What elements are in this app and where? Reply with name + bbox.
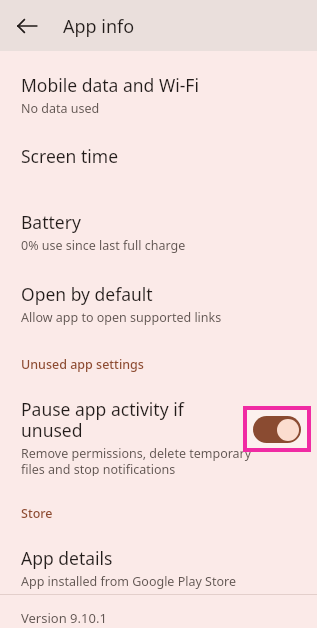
staticText: Allow app to open supported links xyxy=(21,309,222,325)
button[interactable]: App details xyxy=(0,540,317,590)
staticText: App info xyxy=(63,14,135,39)
button[interactable]: Battery xyxy=(0,203,317,253)
staticText: Pause app activity if unused xyxy=(21,397,184,442)
staticText: Remove permissions, delete temporary fil… xyxy=(21,445,252,476)
staticText: 0% use since last full charge xyxy=(21,237,186,253)
button[interactable]: Open by default xyxy=(0,275,317,325)
button[interactable]: Back xyxy=(11,10,43,42)
button[interactable]: Pause app activity if unused toggle xyxy=(247,410,307,448)
button[interactable]: Mobile data and Wi-Fi xyxy=(0,66,317,116)
button[interactable]: Screen time xyxy=(0,137,317,173)
staticText: Mobile data and Wi-Fi xyxy=(21,73,199,97)
button[interactable]: Pause app activity if unused xyxy=(0,391,317,476)
staticText: Unused app settings xyxy=(21,356,144,373)
staticText: Screen time xyxy=(21,144,119,168)
staticText: Store xyxy=(21,505,53,522)
staticText: App details xyxy=(21,546,113,570)
staticText: App installed from Google Play Store xyxy=(21,573,236,590)
staticText: No data used xyxy=(21,100,100,116)
staticText: Battery xyxy=(21,210,81,234)
staticText: Open by default xyxy=(21,282,153,306)
staticText: Version 9.10.1 xyxy=(21,609,107,627)
